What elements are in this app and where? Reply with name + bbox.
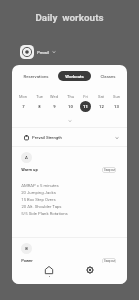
- staticText: 20 Jumping Jacks: [21, 190, 56, 195]
- button[interactable]: Mon: [16, 94, 30, 112]
- staticText: Thu: [67, 94, 74, 99]
- staticText: Tue: [36, 94, 43, 99]
- staticText: Prevail: [37, 50, 49, 54]
- button[interactable]: Home: [41, 265, 57, 281]
- staticText: Sun: [113, 94, 120, 99]
- button[interactable]: Thu: [63, 94, 77, 112]
- staticText: 20 Alt. Shoulder Taps: [21, 204, 62, 209]
- staticText: 9: [53, 104, 56, 109]
- staticText: 8: [38, 104, 41, 109]
- button[interactable]: Classes: [93, 71, 123, 81]
- staticText: Prevail Strength: [32, 135, 62, 140]
- button[interactable]: Settings: [82, 265, 98, 281]
- button[interactable]: Swap out: [102, 167, 116, 173]
- staticText: AMRAP x 5 minutes: [21, 183, 59, 188]
- staticText: 11: [83, 104, 88, 109]
- staticText: Workouts: [65, 74, 84, 79]
- button[interactable]: Fri: [78, 94, 92, 112]
- staticText: 12: [99, 104, 104, 109]
- staticText: 15 Box Step Overs: [21, 197, 56, 202]
- button[interactable]: Swap out: [102, 258, 116, 264]
- staticText: Wed: [50, 94, 58, 99]
- staticText: 13: [114, 104, 119, 109]
- button[interactable]: Prevail Strength: [12, 130, 127, 145]
- staticText: A: [25, 155, 28, 160]
- staticText: 5/5 Side Plank Rotations: [21, 211, 68, 216]
- staticText: 10: [68, 104, 73, 109]
- button[interactable]: Wed: [47, 94, 61, 112]
- staticText: Power: [21, 258, 33, 263]
- staticText: Fri: [83, 94, 88, 99]
- staticText: Swap out: [104, 169, 115, 172]
- staticText: Mon: [19, 94, 27, 99]
- staticText: Reservations: [23, 74, 49, 79]
- staticText: Sat: [98, 94, 104, 99]
- staticText: B: [25, 246, 28, 251]
- button[interactable]: Reservations: [16, 71, 56, 81]
- button[interactable]: Sun: [109, 94, 123, 112]
- staticText: Swap out: [104, 260, 115, 263]
- staticText: Classes: [100, 74, 116, 79]
- button[interactable]: Workouts: [58, 71, 91, 81]
- staticText: Daily workouts: [35, 12, 104, 24]
- button[interactable]: Sat: [94, 94, 108, 112]
- button[interactable]: Tue: [32, 94, 46, 112]
- staticText: 7: [22, 104, 25, 109]
- button[interactable]: Prevail: [20, 45, 56, 59]
- staticText: Warm up: [21, 167, 38, 172]
